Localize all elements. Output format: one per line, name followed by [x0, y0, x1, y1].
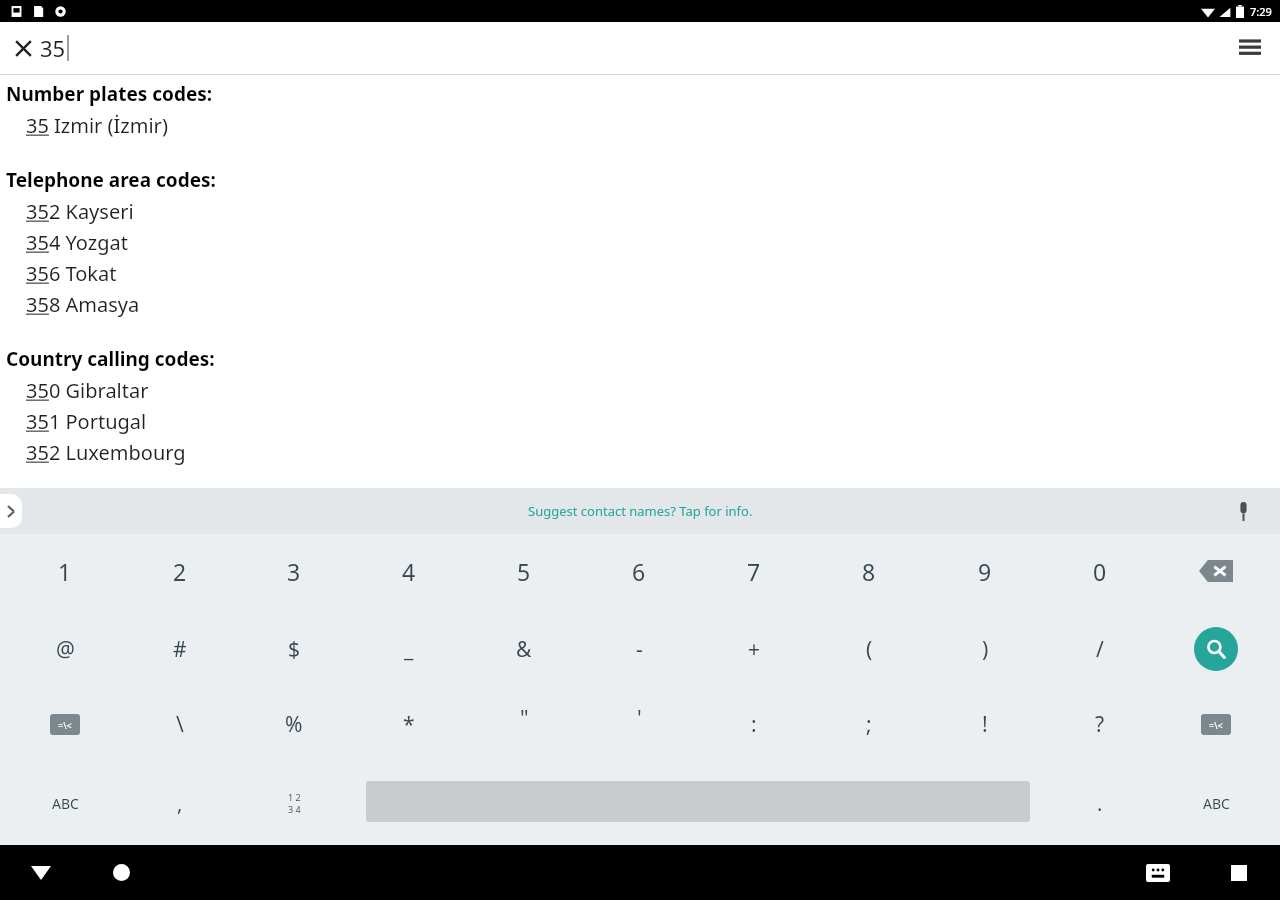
staticText: 35 Izmir (İzmir) [26, 112, 168, 139]
button[interactable]: ) [928, 616, 1042, 682]
button[interactable]: 356 Tokat [0, 258, 1280, 289]
staticText: / [1096, 635, 1104, 664]
button[interactable]: $ [237, 616, 351, 682]
button[interactable]: Menu [1230, 28, 1270, 68]
button[interactable]: ' [582, 691, 696, 757]
staticText: _ [404, 635, 414, 664]
button[interactable]: 5 [467, 538, 581, 604]
staticText: % [285, 710, 303, 739]
button[interactable]: / [1043, 616, 1157, 682]
button[interactable]: " [467, 691, 581, 757]
staticText: . [1097, 790, 1103, 817]
button[interactable]: 8 [812, 538, 926, 604]
button[interactable]: . [1043, 773, 1157, 833]
staticText: $ [288, 635, 301, 664]
staticText: 5 [517, 556, 531, 587]
button[interactable]: , [123, 773, 237, 833]
staticText: 351 Portugal [26, 408, 147, 435]
staticText: ABC [1203, 794, 1230, 813]
staticText: =\< [1209, 719, 1223, 731]
button[interactable]: 0 [1043, 538, 1157, 604]
button[interactable]: ABC [1159, 773, 1273, 833]
staticText: 1 2 [288, 791, 301, 803]
button[interactable]: Recents [1218, 845, 1260, 900]
button[interactable]: + [697, 616, 811, 682]
button[interactable]: Home [100, 845, 142, 900]
button[interactable]: \ [123, 691, 237, 757]
staticText: Telephone area codes: [6, 167, 216, 193]
button[interactable]: % [237, 691, 351, 757]
staticText: 9 [978, 556, 992, 587]
staticText: 3 [287, 556, 301, 587]
button[interactable]: 354 Yozgat [0, 227, 1280, 258]
button[interactable]: Back [20, 845, 62, 900]
staticText: 2 [173, 556, 187, 587]
button[interactable]: : [697, 691, 811, 757]
staticText: 352 Kayseri [26, 198, 134, 225]
button[interactable]: 7 [697, 538, 811, 604]
button[interactable]: * [352, 691, 466, 757]
staticText: 352 Luxembourg [26, 439, 186, 466]
staticText: 8 [862, 556, 876, 587]
button[interactable]: Key [1159, 691, 1273, 757]
staticText: ; [866, 710, 872, 739]
staticText: & [516, 635, 532, 664]
staticText: @ [56, 635, 75, 664]
button[interactable]: Switch keyboard [1136, 845, 1180, 900]
button[interactable]: ? [1043, 691, 1157, 757]
button[interactable]: 352 Kayseri [0, 196, 1280, 227]
staticText: 358 Amasya [26, 291, 140, 318]
button[interactable]: # [123, 616, 237, 682]
other: Symbols [50, 714, 80, 735]
staticText: 0 [1093, 556, 1107, 587]
staticText: ABC [52, 794, 79, 813]
button[interactable]: 358 Amasya [0, 289, 1280, 320]
staticText: 6 [632, 556, 646, 587]
button[interactable]: ! [928, 691, 1042, 757]
button[interactable]: Symbols [8, 691, 122, 757]
staticText: 35 [40, 33, 66, 63]
button[interactable]: 352 Luxembourg [0, 437, 1280, 468]
staticText: 1 [58, 556, 72, 587]
button[interactable]: Suggest contact names? Tap for info. [528, 502, 753, 520]
button[interactable]: - [582, 616, 696, 682]
button[interactable]: Key [1159, 538, 1273, 604]
staticText: 4 [402, 556, 416, 587]
button[interactable]: ABC [8, 773, 122, 833]
staticText: + [748, 635, 761, 664]
other: Backspace [1199, 560, 1233, 582]
button[interactable]: 351 Portugal [0, 406, 1280, 437]
button[interactable]: _ [352, 616, 466, 682]
staticText: ? [1095, 710, 1105, 739]
button[interactable]: 35 Izmir (İzmir) [0, 110, 1280, 141]
staticText: ' [637, 704, 642, 733]
staticText: 356 Tokat [26, 260, 117, 287]
button[interactable]: 6 [582, 538, 696, 604]
staticText: ! [982, 710, 988, 739]
button[interactable]: 350 Gibraltar [0, 375, 1280, 406]
button[interactable]: Numbers [237, 773, 351, 833]
staticText: =\< [58, 719, 72, 731]
button[interactable]: Voice input [1228, 496, 1258, 526]
button[interactable]: @ [8, 616, 122, 682]
button[interactable]: ( [812, 616, 926, 682]
button[interactable]: ; [812, 691, 926, 757]
staticText: ) [982, 635, 989, 664]
button[interactable]: 4 [352, 538, 466, 604]
button[interactable]: Key [1159, 616, 1273, 682]
staticText: # [173, 635, 187, 664]
staticText: Suggest contact names? Tap for info. [528, 502, 753, 520]
button[interactable]: Clear query [6, 31, 40, 65]
other: Symbols [1201, 714, 1231, 735]
button[interactable]: 3 [237, 538, 351, 604]
other: Search [1194, 627, 1238, 671]
staticText: , [177, 790, 183, 817]
button[interactable]: 2 [123, 538, 237, 604]
button[interactable]: & [467, 616, 581, 682]
button[interactable]: Expand suggestions [0, 494, 22, 528]
button[interactable]: 1 [8, 538, 122, 604]
staticText: 7:29 [1250, 4, 1272, 19]
button[interactable]: 9 [928, 538, 1042, 604]
staticText: 7 [747, 556, 761, 587]
